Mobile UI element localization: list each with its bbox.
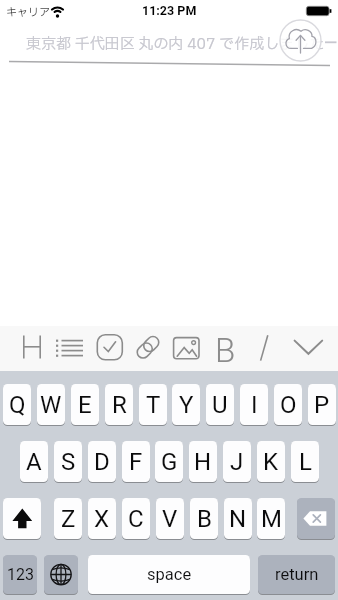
- button[interactable]: C: [122, 498, 150, 539]
- staticText: T: [146, 391, 161, 419]
- staticText: I: [251, 391, 258, 419]
- staticText: L: [299, 448, 312, 476]
- staticText: Y: [179, 391, 194, 419]
- button[interactable]: J: [223, 441, 251, 482]
- button[interactable]: N: [224, 498, 252, 539]
- button[interactable]: G: [155, 441, 183, 482]
- staticText: Q: [9, 391, 26, 419]
- button[interactable]: L: [291, 441, 319, 482]
- button[interactable]: [280, 20, 321, 61]
- staticText: H: [194, 448, 212, 476]
- button[interactable]: X: [88, 498, 116, 539]
- button[interactable]: 123: [3, 555, 37, 594]
- button[interactable]: T: [139, 384, 167, 425]
- button[interactable]: [92, 326, 130, 371]
- button[interactable]: D: [88, 441, 116, 482]
- button[interactable]: B: [190, 498, 218, 539]
- button[interactable]: K: [257, 441, 285, 482]
- staticText: 123: [7, 565, 34, 584]
- button[interactable]: space: [88, 555, 250, 594]
- staticText: U: [212, 391, 228, 419]
- button[interactable]: A: [20, 441, 48, 482]
- staticText: W: [40, 391, 62, 419]
- button[interactable]: E: [71, 384, 99, 425]
- button[interactable]: [171, 326, 209, 371]
- staticText: F: [129, 448, 143, 476]
- button[interactable]: [44, 555, 78, 594]
- button[interactable]: F: [122, 441, 150, 482]
- button[interactable]: V: [156, 498, 184, 539]
- staticText: M: [261, 505, 282, 533]
- button[interactable]: I: [240, 384, 268, 425]
- staticText: space: [147, 565, 192, 584]
- staticText: Z: [61, 505, 76, 533]
- button[interactable]: Y: [172, 384, 200, 425]
- staticText: G: [161, 448, 178, 476]
- staticText: R: [112, 391, 127, 419]
- staticText: O: [280, 391, 297, 419]
- button[interactable]: [210, 326, 248, 371]
- button[interactable]: [249, 326, 287, 371]
- staticText: D: [94, 448, 110, 476]
- staticText: X: [94, 505, 110, 533]
- staticText: K: [263, 448, 279, 476]
- staticText: キャリア: [6, 4, 50, 21]
- staticText: J: [230, 448, 244, 476]
- button[interactable]: [13, 326, 51, 371]
- staticText: V: [162, 505, 178, 533]
- staticText: P: [314, 391, 330, 419]
- button[interactable]: return: [258, 555, 335, 594]
- button[interactable]: [52, 326, 90, 371]
- button[interactable]: S: [54, 441, 82, 482]
- staticText: 11:23 PM: [142, 3, 197, 18]
- button[interactable]: R: [105, 384, 133, 425]
- staticText: N: [229, 505, 247, 533]
- button[interactable]: W: [37, 384, 65, 425]
- button[interactable]: [131, 326, 169, 371]
- staticText: B: [197, 505, 212, 533]
- button[interactable]: H: [189, 441, 217, 482]
- staticText: E: [78, 391, 92, 419]
- button[interactable]: Z: [54, 498, 82, 539]
- button[interactable]: [297, 498, 335, 539]
- staticText: 東京都 千代田区 丸の内 407 で作成しました: [26, 33, 325, 55]
- button[interactable]: U: [206, 384, 234, 425]
- staticText: C: [128, 505, 144, 533]
- staticText: S: [61, 448, 76, 476]
- button[interactable]: M: [257, 498, 285, 539]
- button[interactable]: [289, 326, 327, 371]
- staticText: B: [215, 331, 236, 370]
- staticText: A: [26, 448, 42, 476]
- button[interactable]: O: [274, 384, 302, 425]
- button[interactable]: [3, 498, 41, 539]
- button[interactable]: Q: [3, 384, 31, 425]
- staticText: return: [275, 565, 319, 584]
- button[interactable]: P: [308, 384, 336, 425]
